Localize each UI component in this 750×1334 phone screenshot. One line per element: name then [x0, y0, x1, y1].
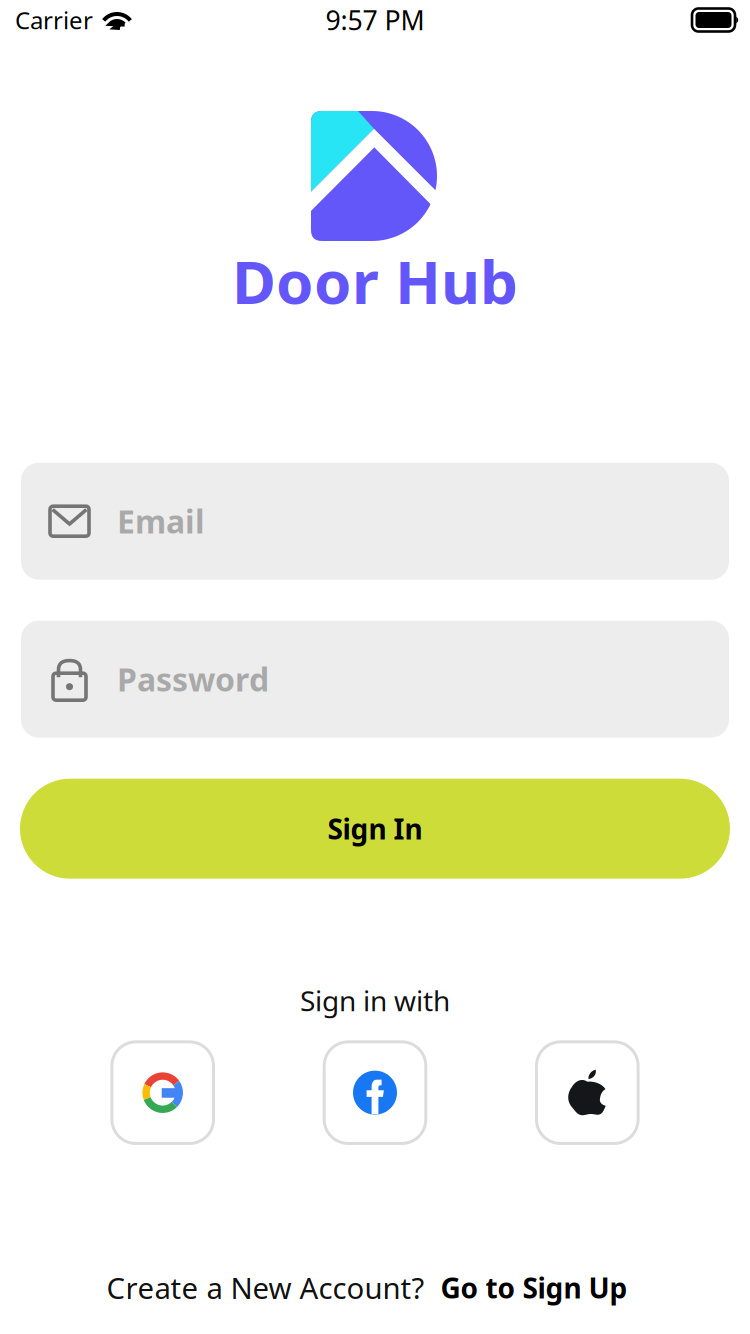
staticText: Email: [117, 500, 205, 542]
button[interactable]: Create a New Account?: [106, 1262, 643, 1313]
staticText: Sign In: [327, 810, 422, 847]
staticText: Create a New Account?: [106, 1268, 424, 1307]
button[interactable]: Email: [21, 463, 729, 580]
staticText: 9:57 PM: [325, 2, 424, 38]
staticText: Sign in with: [300, 982, 450, 1019]
button[interactable]: Sign in with Facebook: [324, 1042, 426, 1143]
button[interactable]: Sign in with Google: [112, 1042, 213, 1143]
staticText: Door Hub: [232, 241, 518, 321]
staticText: Password: [117, 658, 269, 700]
button[interactable]: Sign In: [20, 779, 730, 879]
button[interactable]: Password: [21, 621, 729, 738]
staticText: Go to Sign Up: [440, 1269, 627, 1306]
button[interactable]: Sign in with Apple: [536, 1042, 638, 1143]
staticText: Carrier: [15, 4, 93, 36]
